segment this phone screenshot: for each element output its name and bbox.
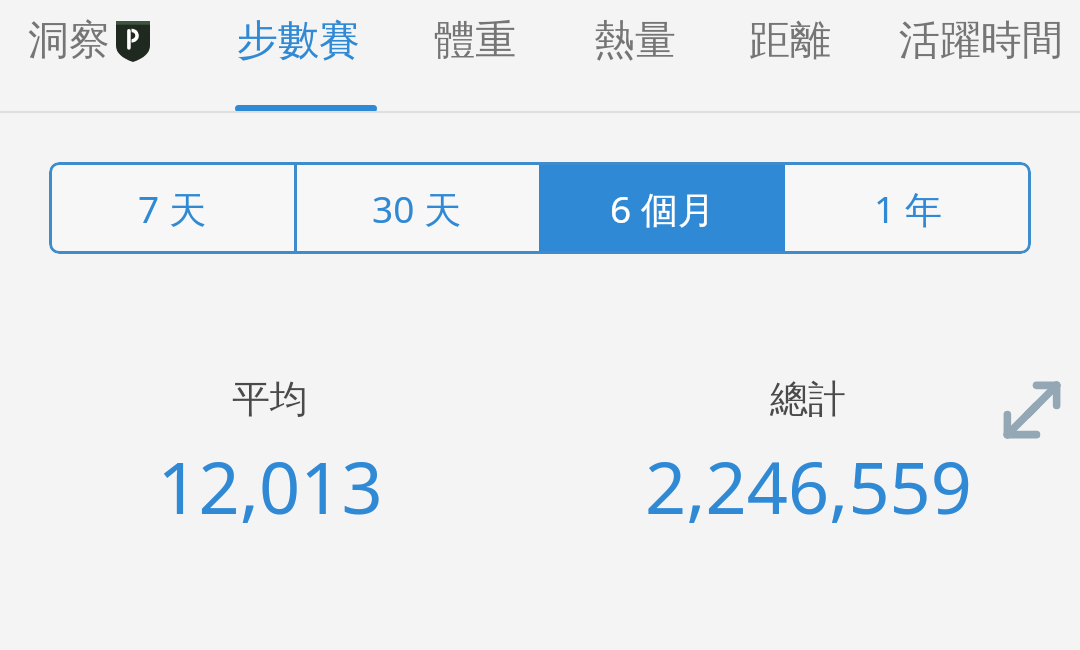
staticText: 1 年 xyxy=(874,183,942,234)
staticText: 體重 xyxy=(434,15,516,67)
staticText: 2,246,559 xyxy=(645,437,972,535)
staticText: 30 天 xyxy=(372,183,461,234)
button[interactable]: 6 個月 xyxy=(539,162,785,254)
button[interactable]: 平均 xyxy=(70,375,470,535)
button[interactable]: 洞察 xyxy=(28,0,150,106)
staticText: 洞察 xyxy=(28,15,110,67)
staticText: 總計 xyxy=(770,375,846,423)
staticText: 12,013 xyxy=(157,437,383,535)
button[interactable]: 距離 xyxy=(749,0,831,106)
staticText: 距離 xyxy=(749,15,831,67)
button[interactable]: 1 年 xyxy=(785,162,1031,254)
staticText: 7 天 xyxy=(138,183,206,234)
button[interactable]: 體重 xyxy=(434,0,516,106)
staticText: 平均 xyxy=(232,375,308,423)
button[interactable]: 總計 xyxy=(588,375,1028,535)
button[interactable]: 30 天 xyxy=(294,162,539,254)
staticText: 6 個月 xyxy=(610,183,715,234)
button[interactable]: 熱量 xyxy=(594,0,676,106)
staticText: 活躍時間 xyxy=(899,15,1063,67)
button[interactable]: 步數賽 xyxy=(237,0,360,106)
button[interactable]: 活躍時間 xyxy=(899,0,1063,106)
button[interactable]: Expand chart xyxy=(995,373,1069,447)
button[interactable]: 7 天 xyxy=(49,162,294,254)
staticText: 步數賽 xyxy=(237,15,360,67)
staticText: 熱量 xyxy=(594,15,676,67)
other: Premium badge xyxy=(116,21,150,62)
